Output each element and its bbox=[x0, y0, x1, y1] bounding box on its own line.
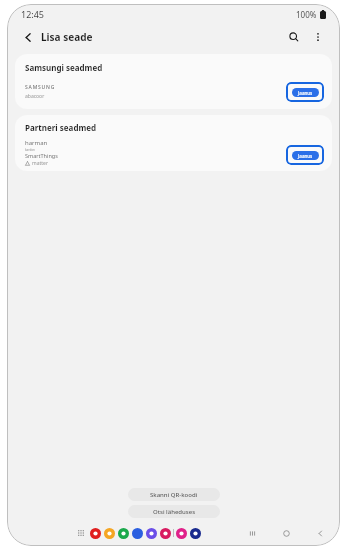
button[interactable]: Recents bbox=[244, 525, 260, 541]
staticText: 12:45 bbox=[21, 8, 45, 20]
button[interactable]: App 3 bbox=[118, 528, 129, 539]
button[interactable]: Jaanus bbox=[286, 145, 324, 165]
staticText: SmartThings bbox=[25, 152, 58, 159]
button[interactable]: Samsungi seadmed bbox=[15, 54, 332, 109]
button[interactable]: Back bbox=[19, 28, 37, 46]
button[interactable]: Search bbox=[284, 27, 304, 47]
staticText: harman bbox=[25, 139, 48, 147]
button[interactable]: App 4 bbox=[132, 528, 143, 539]
button[interactable]: App 7 bbox=[176, 528, 187, 539]
button[interactable]: Skanni QR-koodi bbox=[128, 488, 220, 501]
button[interactable]: More options bbox=[308, 27, 328, 47]
staticText: matter bbox=[32, 160, 48, 167]
button[interactable]: Otsi läheduses bbox=[128, 505, 220, 518]
staticText: Samsungi seadmed bbox=[25, 62, 103, 73]
button[interactable]: Jaanus bbox=[286, 82, 324, 102]
staticText: abacoor bbox=[25, 93, 45, 100]
button[interactable]: Partneri seadmed bbox=[15, 115, 332, 171]
staticText: Partneri seadmed bbox=[25, 122, 97, 133]
staticText: Lisa seade bbox=[41, 30, 93, 44]
button[interactable]: Back bbox=[312, 525, 328, 541]
button[interactable]: Apps bbox=[75, 527, 87, 539]
button[interactable]: App 2 bbox=[104, 528, 115, 539]
button[interactable]: Home bbox=[278, 525, 294, 541]
staticText: Skanni QR-koodi bbox=[150, 491, 198, 499]
button[interactable]: App 5 bbox=[146, 528, 157, 539]
staticText: 100% bbox=[296, 9, 317, 20]
button[interactable]: App 1 bbox=[90, 528, 101, 539]
staticText: kardon bbox=[25, 148, 35, 152]
staticText: Otsi läheduses bbox=[153, 508, 196, 516]
button[interactable]: App 8 bbox=[190, 528, 201, 539]
staticText: Jaanus bbox=[298, 153, 313, 159]
staticText: Jaanus bbox=[298, 90, 313, 96]
staticText: SAMSUNG bbox=[25, 84, 56, 91]
button[interactable]: App 6 bbox=[160, 528, 171, 539]
